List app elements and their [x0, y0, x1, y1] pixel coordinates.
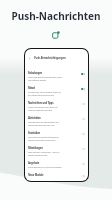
- button[interactable]: Rätsel: [25, 84, 88, 99]
- staticText: Aktivitäten: [28, 116, 41, 120]
- button[interactable]: Toggle: [81, 175, 85, 177]
- button[interactable]: Toggle: [81, 103, 85, 105]
- staticText: Sei erhalte Benachrichtigungen, wenn dic…: [28, 76, 63, 82]
- button[interactable]: Statistiken: [25, 129, 88, 144]
- button[interactable]: Toggle: [81, 73, 85, 75]
- button[interactable]: Angebote: [25, 159, 88, 171]
- staticText: Nachrichten und Tipps: [28, 101, 54, 105]
- button[interactable]: Toggle: [81, 118, 85, 120]
- button[interactable]: Mitteilungen: [25, 144, 88, 159]
- staticText: Informationen zu Abos und Rabatten: [28, 166, 62, 169]
- staticText: Push-Nachrichten: [0, 9, 112, 23]
- button[interactable]: Einladungen: [25, 69, 88, 84]
- staticText: Angebote: [28, 161, 40, 165]
- button[interactable]: Toggle: [81, 148, 85, 150]
- staticText: Neue Module: [28, 173, 44, 177]
- button[interactable]: Neue Module: [25, 171, 88, 181]
- button[interactable]: Toggle: [81, 163, 85, 165]
- staticText: Erinnerungen an deine Rätsel und gespeic…: [28, 121, 59, 127]
- button[interactable]: Toggle: [81, 88, 85, 90]
- staticText: Einladungen: [28, 71, 43, 75]
- staticText: Bleib auf dem Laufenden – alles zu deine…: [28, 151, 60, 157]
- button[interactable]: Back: [28, 57, 31, 60]
- button[interactable]: Nachrichten und Tipps: [25, 99, 88, 114]
- other: Push notifications: [52, 31, 60, 39]
- staticText: Rätsel: [28, 86, 35, 90]
- button[interactable]: Toggle: [81, 133, 85, 135]
- staticText: Statistiken: [28, 131, 41, 135]
- button[interactable]: Aktivitäten: [25, 114, 88, 129]
- staticText: Sei der Erste, der es erfährt, wenn es e…: [28, 91, 61, 97]
- staticText: Mitteilungen: [28, 146, 43, 150]
- staticText: Neue Nachrichten und Tipps von unserer R…: [28, 106, 58, 112]
- staticText: Push-Benachrichtigungen: [34, 56, 66, 60]
- staticText: Wöchentliche Zusammenfassung deines Fort…: [28, 136, 59, 142]
